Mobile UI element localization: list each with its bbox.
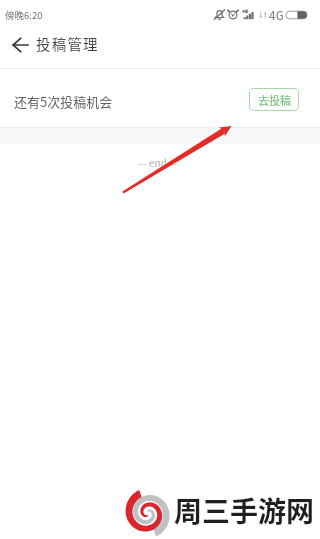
staticText: 还有5次投稿机会 [14, 92, 113, 111]
staticText: 投稿管理 [36, 33, 99, 54]
staticText: -- end -- [139, 155, 177, 169]
staticText: 周三手游网 [174, 490, 315, 531]
staticText: 4G [269, 7, 285, 24]
button[interactable]: Back [1, 25, 41, 65]
staticText: 去投稿 [258, 92, 291, 108]
button[interactable]: 还有5次投稿机会 [0, 69, 320, 127]
button[interactable]: 去投稿 [249, 88, 299, 111]
staticText: 傍晚6:20 [5, 8, 43, 22]
